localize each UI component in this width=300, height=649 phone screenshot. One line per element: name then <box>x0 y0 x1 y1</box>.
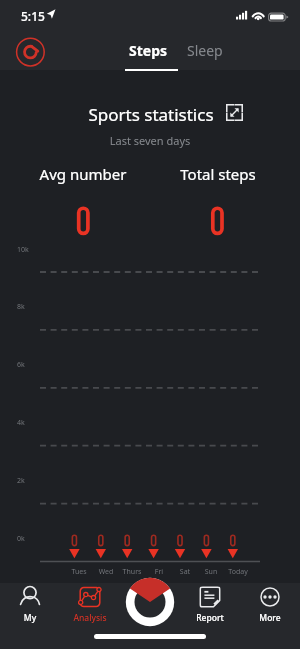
staticText: Wed <box>91 567 121 577</box>
staticText: 8k <box>17 302 25 312</box>
staticText: 5:15 <box>21 8 45 24</box>
staticText: Today <box>223 567 253 577</box>
staticText: 2k <box>17 476 25 486</box>
staticText: Sat <box>170 567 200 577</box>
staticText: My <box>0 612 60 624</box>
button[interactable]: Report <box>180 583 240 625</box>
staticText: 6k <box>17 360 25 370</box>
staticText: Last seven days <box>0 133 300 148</box>
staticText: Tues <box>64 567 94 577</box>
button[interactable]: More <box>240 583 300 625</box>
staticText: Steps <box>129 41 168 60</box>
staticText: Thurs <box>117 567 147 577</box>
button[interactable]: Steps <box>128 38 169 62</box>
button[interactable]: Avg number <box>16 162 150 242</box>
button[interactable]: Total steps <box>151 162 285 242</box>
staticText: 4k <box>17 418 25 428</box>
staticText: 10k <box>17 245 29 255</box>
button[interactable]: Analysis <box>60 583 120 625</box>
staticText: Total steps <box>151 164 285 184</box>
staticText: More <box>240 612 300 624</box>
staticText: Avg number <box>16 164 150 184</box>
staticText: Sun <box>196 567 226 577</box>
staticText: Report <box>180 612 240 624</box>
staticText: Analysis <box>60 612 120 624</box>
button[interactable]: Record <box>126 578 174 626</box>
button[interactable]: Sleep <box>186 38 224 62</box>
button[interactable]: Fullscreen <box>226 104 243 121</box>
staticText: 0k <box>17 534 25 544</box>
staticText: Fri <box>144 567 174 577</box>
button[interactable]: Profile <box>14 36 47 69</box>
staticText: Sleep <box>187 41 223 60</box>
button[interactable]: My <box>0 583 60 625</box>
staticText: Sports statistics <box>1 103 300 126</box>
